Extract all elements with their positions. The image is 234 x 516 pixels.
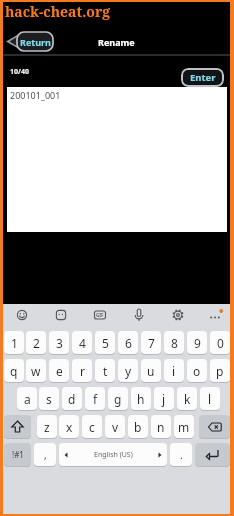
staticText: GIF	[96, 312, 104, 318]
staticText: !#1	[12, 449, 24, 460]
button[interactable]: !#1	[4, 443, 31, 466]
button[interactable]	[12, 305, 32, 325]
button[interactable]: c	[82, 415, 102, 438]
staticText: v	[112, 419, 119, 435]
staticText: z	[44, 419, 50, 435]
button[interactable]: y	[118, 359, 138, 382]
staticText: 4	[79, 335, 86, 351]
staticText: ,	[44, 448, 47, 462]
staticText: g	[114, 391, 122, 407]
staticText: i	[172, 363, 176, 379]
staticText: t	[103, 363, 108, 379]
button[interactable]: a	[17, 387, 37, 410]
button[interactable]: d	[62, 387, 82, 410]
staticText: 5	[102, 335, 109, 351]
staticText: 1	[11, 335, 18, 351]
staticText: c	[89, 419, 95, 435]
button[interactable]	[195, 443, 230, 466]
button[interactable]: 0	[210, 331, 230, 354]
staticText: 3	[56, 335, 63, 351]
staticText: w	[31, 363, 41, 379]
button[interactable]: i	[164, 359, 184, 382]
button[interactable]: f	[85, 387, 105, 410]
button[interactable]: 3	[49, 331, 69, 354]
staticText: f	[93, 391, 98, 407]
staticText: 0	[217, 335, 224, 351]
button[interactable]: ,	[34, 443, 56, 466]
staticText: s	[46, 391, 52, 407]
staticText: m	[178, 419, 190, 435]
button[interactable]	[51, 305, 71, 325]
button[interactable]: t	[95, 359, 115, 382]
staticText: u	[147, 363, 155, 379]
button[interactable]	[168, 305, 188, 325]
button[interactable]: q	[4, 359, 24, 382]
staticText: a	[24, 391, 31, 407]
staticText: Rename	[98, 36, 135, 48]
button[interactable]: o	[187, 359, 207, 382]
staticText: 7	[148, 335, 155, 351]
button[interactable]	[199, 415, 230, 438]
staticText: q	[10, 363, 18, 379]
button[interactable]: 1	[4, 331, 24, 354]
button[interactable]: 8	[164, 331, 184, 354]
button[interactable]: English (US)	[59, 443, 167, 466]
button[interactable]: z	[37, 415, 57, 438]
staticText: k	[184, 391, 191, 407]
button[interactable]: j	[154, 387, 174, 410]
staticText: p	[216, 363, 224, 379]
button[interactable]: b	[128, 415, 148, 438]
staticText: o	[193, 363, 201, 379]
staticText: 8	[171, 335, 178, 351]
staticText: e	[56, 363, 63, 379]
button[interactable]: u	[141, 359, 161, 382]
staticText: 6	[125, 335, 132, 351]
button[interactable]: 200101_001	[7, 87, 227, 232]
button[interactable]: r	[72, 359, 92, 382]
button[interactable]: 5	[95, 331, 115, 354]
button[interactable]	[129, 305, 149, 325]
staticText: x	[66, 419, 73, 435]
staticText: 2	[33, 335, 40, 351]
staticText: 200101_001	[10, 89, 61, 101]
staticText: .	[180, 448, 183, 462]
button[interactable]	[90, 305, 110, 325]
button[interactable]: s	[39, 387, 59, 410]
button[interactable]: 2	[26, 331, 46, 354]
button[interactable]: p	[210, 359, 230, 382]
staticText: d	[68, 391, 76, 407]
staticText: Enter	[190, 71, 216, 84]
button[interactable]: v	[105, 415, 125, 438]
button[interactable]: Enter	[181, 68, 224, 87]
staticText: l	[208, 391, 212, 407]
button[interactable]: h	[131, 387, 151, 410]
button[interactable]: w	[26, 359, 46, 382]
button[interactable]: l	[200, 387, 220, 410]
button[interactable]: 7	[141, 331, 161, 354]
button[interactable]: n	[151, 415, 171, 438]
staticText: y	[125, 363, 132, 379]
button[interactable]	[4, 415, 31, 438]
button[interactable]: 9	[187, 331, 207, 354]
button[interactable]: e	[49, 359, 69, 382]
button[interactable]: k	[177, 387, 197, 410]
button[interactable]: g	[108, 387, 128, 410]
staticText: 10/40	[10, 67, 29, 77]
staticText: r	[80, 363, 85, 379]
staticText: j	[162, 391, 166, 407]
button[interactable]: x	[59, 415, 79, 438]
staticText: n	[157, 419, 165, 435]
button[interactable]: .	[170, 443, 192, 466]
staticText: hack-cheat.org	[5, 2, 111, 21]
button[interactable]: m	[174, 415, 194, 438]
staticText: 9	[194, 335, 201, 351]
button[interactable]: 4	[72, 331, 92, 354]
button[interactable]	[207, 305, 227, 325]
staticText: English (US)	[94, 450, 133, 460]
staticText: h	[137, 391, 145, 407]
staticText: b	[134, 419, 142, 435]
button[interactable]: Return	[5, 31, 55, 52]
button[interactable]: 6	[118, 331, 138, 354]
staticText: Return	[20, 36, 51, 48]
